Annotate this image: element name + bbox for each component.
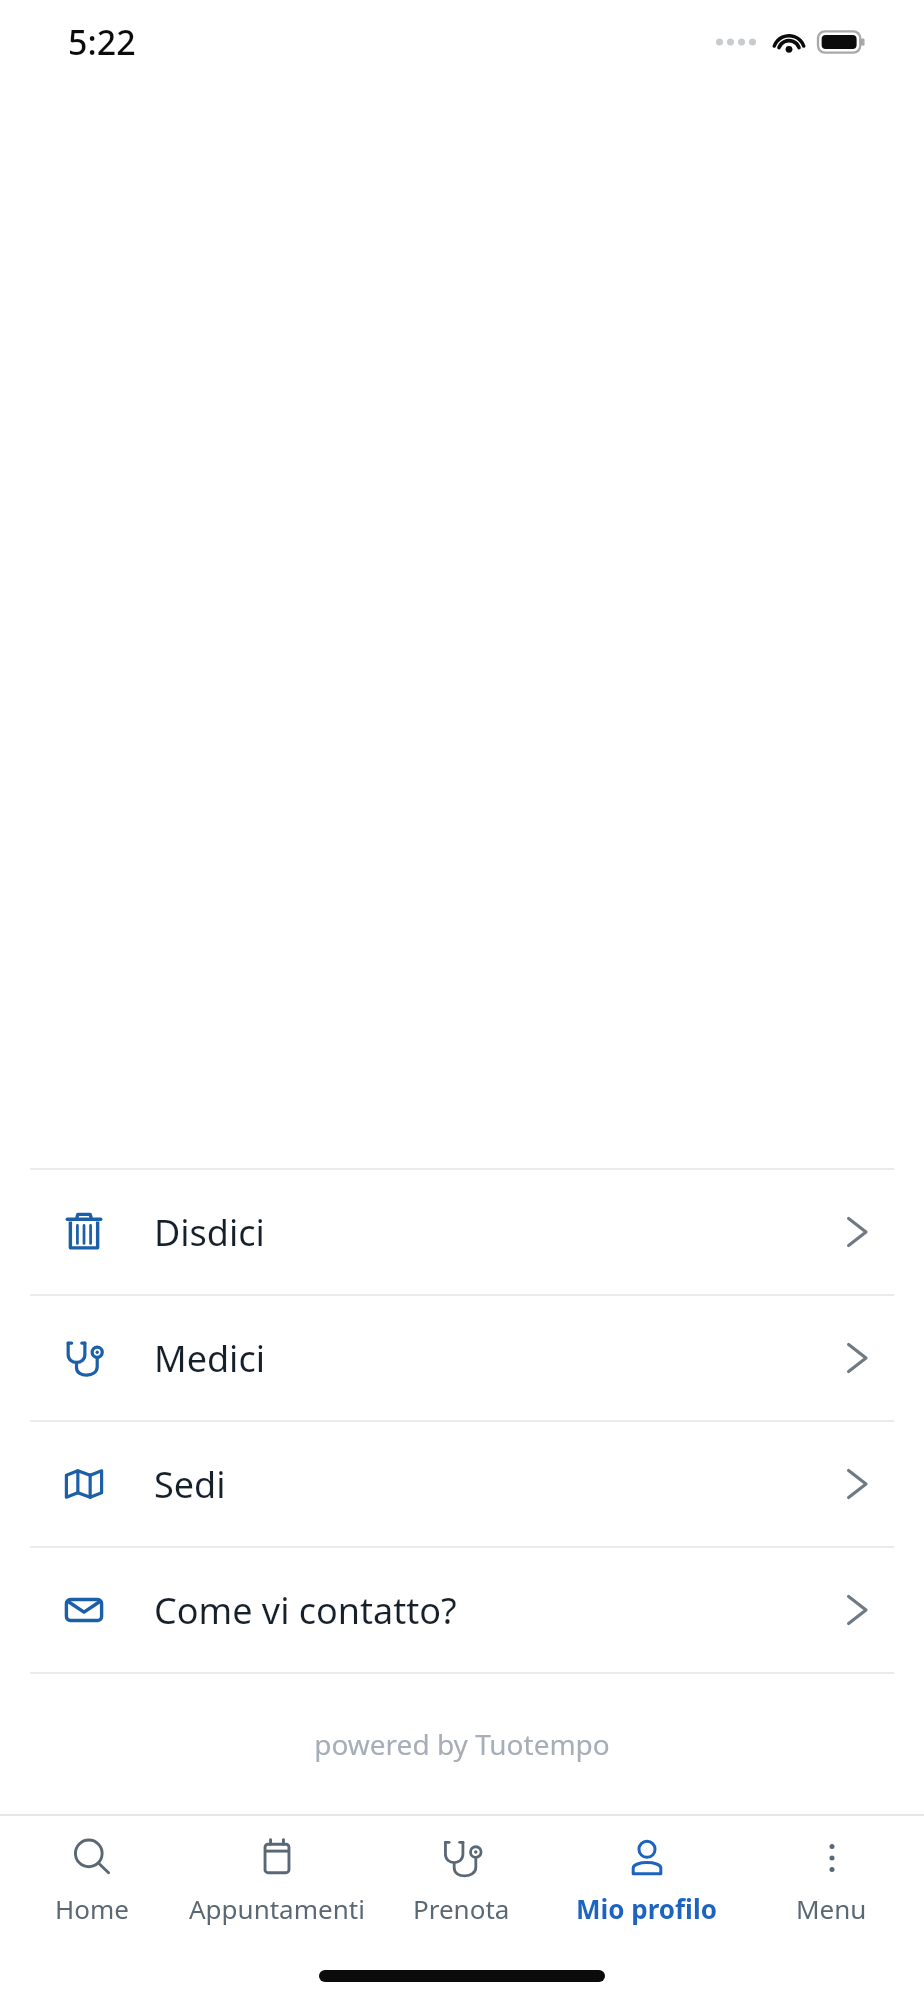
button[interactable]: Mio profilo (554, 1816, 739, 1944)
button[interactable]: Menu (739, 1816, 924, 1944)
staticText: Menu (796, 1891, 867, 1926)
staticText: Come vi contatto? (154, 1586, 457, 1635)
staticText: Mio profilo (576, 1891, 717, 1926)
staticText: Sedi (154, 1460, 226, 1509)
staticText: Home (55, 1891, 129, 1926)
button[interactable]: Medici (0, 1296, 924, 1420)
staticText: Medici (154, 1334, 265, 1383)
button[interactable]: Come vi contatto? (0, 1548, 924, 1672)
staticText: powered by Tuotempo (314, 1725, 610, 1763)
button[interactable]: Prenota (369, 1816, 554, 1944)
button[interactable]: Sedi (0, 1422, 924, 1546)
staticText: 5:22 (68, 19, 136, 65)
staticText: Disdici (154, 1208, 265, 1257)
staticText: Prenota (413, 1891, 510, 1926)
button[interactable]: Appuntamenti (184, 1816, 369, 1944)
button[interactable]: Home (0, 1816, 184, 1944)
button[interactable]: Disdici (0, 1170, 924, 1294)
staticText: Appuntamenti (189, 1891, 365, 1926)
